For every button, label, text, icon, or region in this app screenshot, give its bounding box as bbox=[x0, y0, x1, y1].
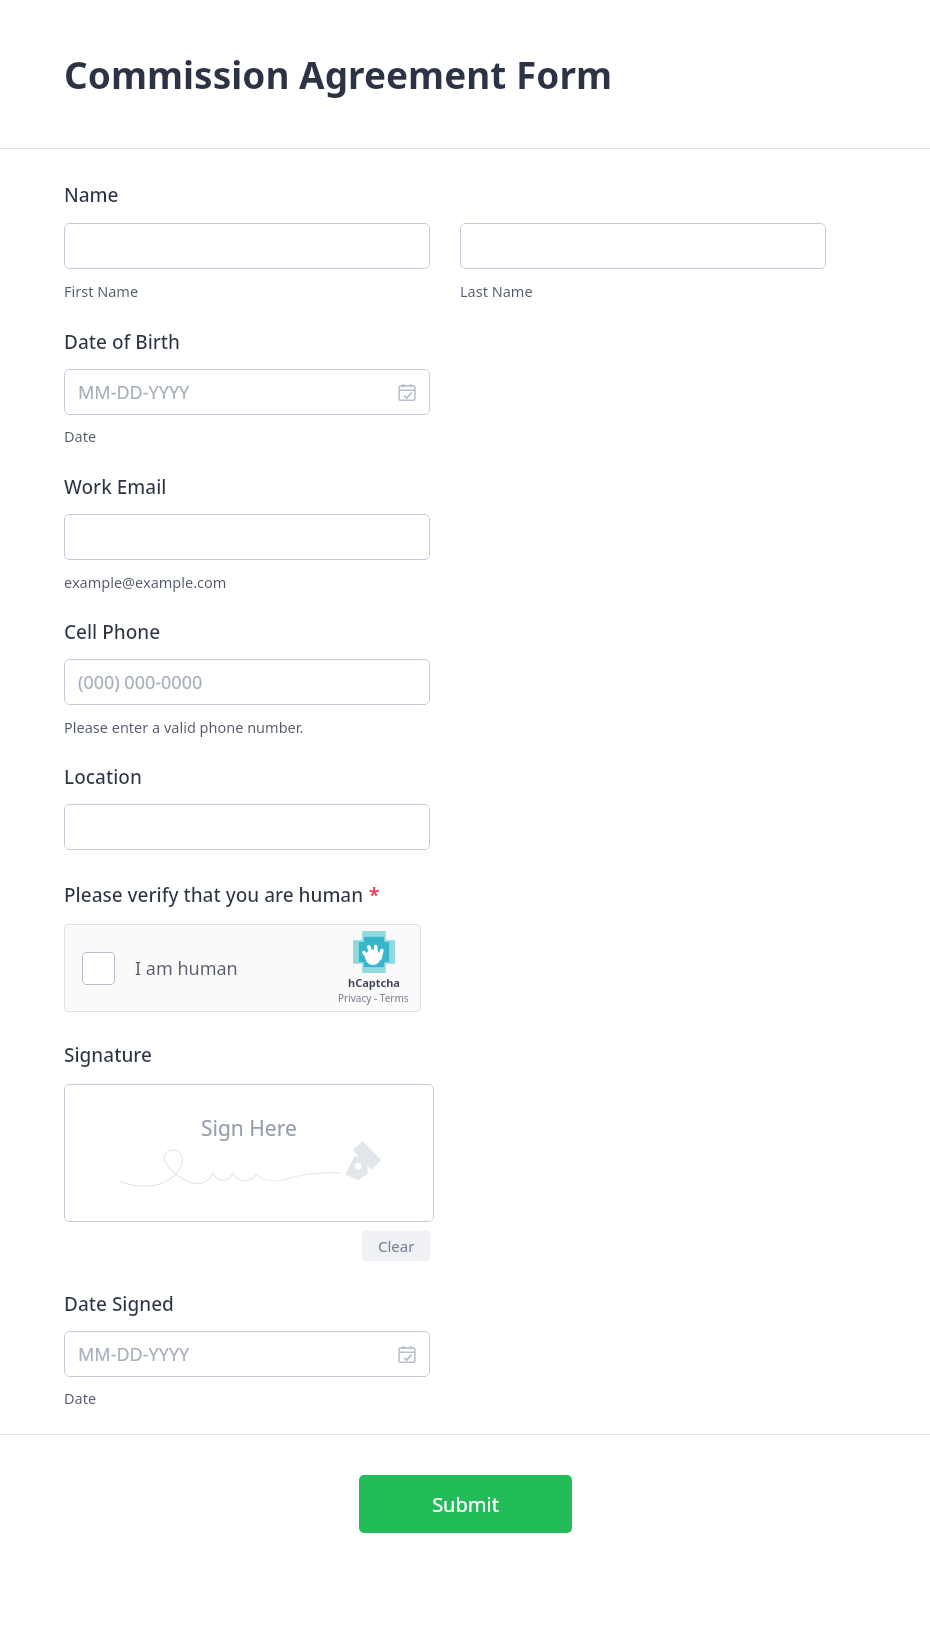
staticText: Last Name bbox=[460, 281, 533, 301]
staticText: Date bbox=[64, 1388, 97, 1408]
staticText: MM-DD-YYYY bbox=[78, 380, 190, 405]
staticText: Date bbox=[64, 426, 97, 446]
staticText: Cell Phone bbox=[64, 619, 161, 645]
button[interactable]: Clear bbox=[362, 1231, 430, 1261]
staticText: Please enter a valid phone number. bbox=[64, 717, 304, 737]
staticText: Commission Agreement Form bbox=[64, 49, 613, 99]
button[interactable]: Submit bbox=[359, 1475, 572, 1533]
button[interactable] bbox=[64, 804, 430, 850]
staticText: Date Signed bbox=[64, 1291, 174, 1317]
staticText: First Name bbox=[64, 281, 139, 301]
button[interactable]: Signature pad bbox=[64, 1084, 434, 1222]
staticText: I am human bbox=[135, 956, 238, 981]
staticText: Sign Here bbox=[201, 1114, 297, 1143]
staticText: Date of Birth bbox=[64, 329, 180, 355]
button[interactable]: (000) 000-0000 bbox=[64, 659, 430, 705]
button[interactable]: MM-DD-YYYY bbox=[64, 1331, 430, 1377]
staticText: Name bbox=[64, 182, 119, 208]
button[interactable] bbox=[64, 223, 430, 269]
button[interactable] bbox=[64, 514, 430, 560]
staticText: (000) 000-0000 bbox=[78, 670, 203, 695]
staticText: Location bbox=[64, 764, 142, 790]
staticText: Please verify that you are human bbox=[64, 882, 364, 908]
staticText: Work Email bbox=[64, 474, 167, 500]
other: Pick date bbox=[398, 383, 416, 401]
staticText: * bbox=[369, 882, 380, 908]
button[interactable]: MM-DD-YYYY bbox=[64, 369, 430, 415]
other: Pick date bbox=[398, 1345, 416, 1363]
button[interactable] bbox=[460, 223, 826, 269]
staticText: Privacy - Terms bbox=[338, 991, 409, 1005]
staticText: MM-DD-YYYY bbox=[78, 1342, 190, 1367]
staticText: Submit bbox=[432, 1491, 499, 1518]
other: I am human checkbox bbox=[82, 952, 115, 985]
staticText: Signature bbox=[64, 1042, 152, 1068]
button[interactable]: I am human checkbox bbox=[64, 924, 421, 1012]
staticText: Clear bbox=[378, 1236, 415, 1256]
staticText: hCaptcha bbox=[348, 975, 400, 990]
staticText: example@example.com bbox=[64, 572, 227, 592]
